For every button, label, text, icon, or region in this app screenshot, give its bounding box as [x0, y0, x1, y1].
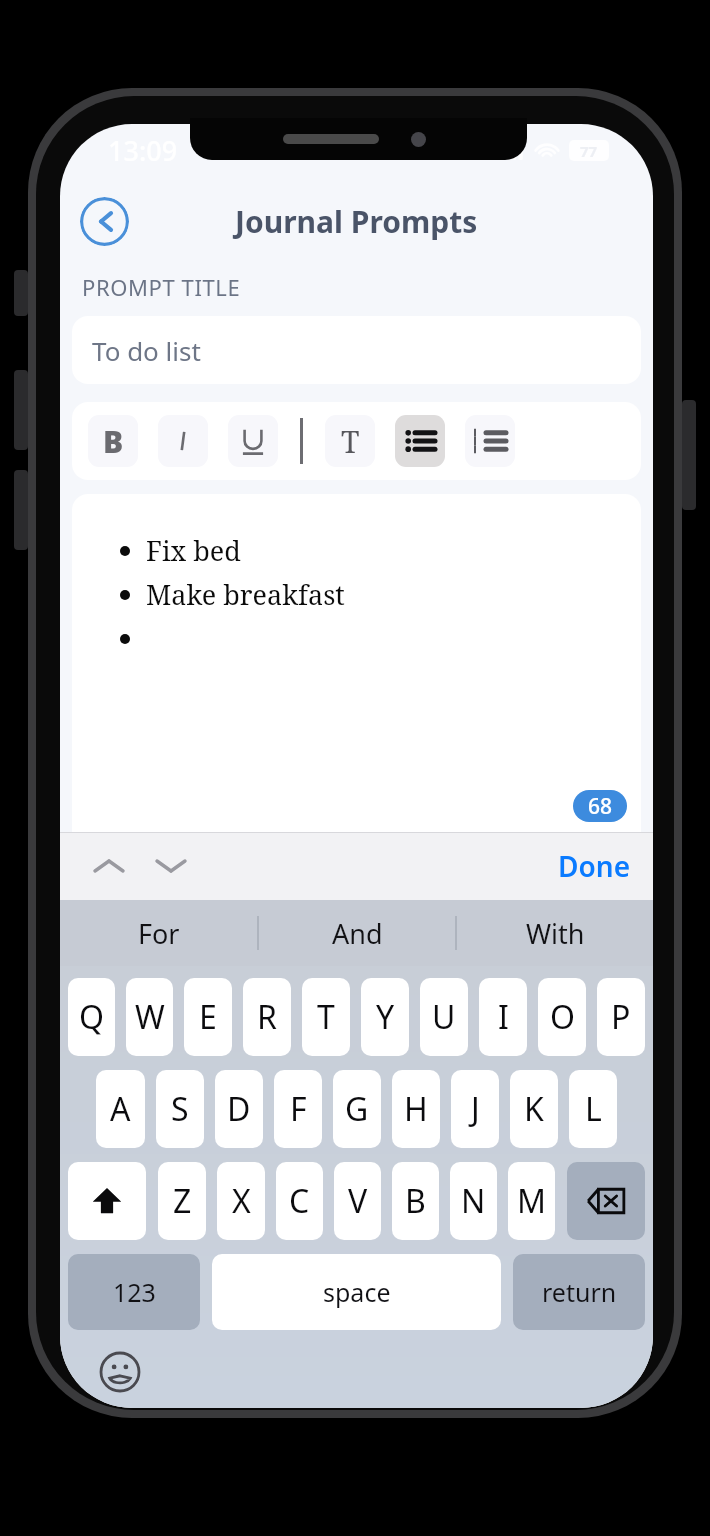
button[interactable]: P: [597, 978, 645, 1056]
staticText: I: [498, 995, 509, 1039]
button[interactable]: V: [334, 1162, 381, 1240]
button[interactable]: F: [274, 1070, 322, 1148]
button[interactable]: A: [96, 1070, 145, 1148]
button[interactable]: Z: [158, 1162, 206, 1240]
staticText: E: [199, 995, 217, 1039]
staticText: M: [517, 1179, 547, 1223]
button[interactable]: Back: [80, 197, 129, 246]
staticText: space: [323, 1275, 391, 1309]
button[interactable]: S: [156, 1070, 204, 1148]
staticText: Q: [79, 995, 104, 1039]
staticText: U: [432, 995, 456, 1039]
button[interactable]: And: [259, 900, 455, 966]
staticText: B: [405, 1179, 426, 1223]
button[interactable]: Underline: [228, 415, 278, 467]
button[interactable]: N: [450, 1162, 497, 1240]
staticText: C: [289, 1179, 310, 1223]
button[interactable]: J: [451, 1070, 499, 1148]
button[interactable]: E: [184, 978, 232, 1056]
button[interactable]: H: [392, 1070, 440, 1148]
button[interactable]: Previous field: [86, 843, 132, 889]
button[interactable]: Bullet list: [395, 415, 445, 467]
button[interactable]: C: [276, 1162, 323, 1240]
staticText: B: [103, 421, 124, 462]
button[interactable]: Next field: [148, 843, 194, 889]
button[interactable]: Q: [68, 978, 115, 1056]
staticText: Fix bed: [146, 532, 241, 569]
button[interactable]: T: [302, 978, 350, 1056]
staticText: S: [171, 1087, 189, 1131]
button[interactable]: For: [60, 900, 257, 966]
staticText: N: [461, 1179, 486, 1223]
staticText: PROMPT TITLE: [82, 272, 241, 302]
staticText: T: [317, 995, 335, 1039]
staticText: Y: [376, 995, 395, 1039]
staticText: D: [227, 1087, 251, 1131]
button[interactable]: G: [333, 1070, 381, 1148]
staticText: J: [471, 1087, 480, 1131]
button[interactable]: 123: [68, 1254, 200, 1330]
button[interactable]: Text style: [325, 415, 375, 467]
button[interactable]: W: [126, 978, 173, 1056]
button[interactable]: Done: [536, 837, 653, 895]
staticText: 77: [580, 141, 598, 161]
staticText: 13:09: [108, 132, 178, 169]
button[interactable]: L: [569, 1070, 617, 1148]
staticText: Journal Prompts: [235, 201, 478, 242]
staticText: Z: [173, 1179, 192, 1223]
button[interactable]: D: [215, 1070, 263, 1148]
button[interactable]: return: [513, 1254, 645, 1330]
button[interactable]: K: [510, 1070, 558, 1148]
button[interactable]: Fix bed: [72, 494, 641, 832]
staticText: Done: [558, 847, 631, 885]
button[interactable]: R: [243, 978, 291, 1056]
staticText: To do list: [92, 333, 201, 368]
button[interactable]: With: [457, 900, 653, 966]
button[interactable]: B: [88, 415, 138, 467]
staticText: P: [611, 995, 631, 1039]
button[interactable]: X: [217, 1162, 265, 1240]
staticText: Make breakfast: [146, 576, 345, 613]
staticText: return: [542, 1275, 617, 1309]
button[interactable]: O: [538, 978, 586, 1056]
button[interactable]: To do list: [72, 316, 641, 384]
button[interactable]: Backspace: [567, 1162, 645, 1240]
staticText: And: [332, 915, 383, 952]
button[interactable]: Numbered list: [465, 415, 515, 467]
staticText: For: [138, 915, 180, 952]
staticText: F: [290, 1087, 307, 1131]
staticText: T: [341, 421, 360, 462]
staticText: L: [585, 1087, 602, 1131]
staticText: G: [345, 1087, 369, 1131]
button[interactable]: space: [212, 1254, 501, 1330]
button[interactable]: M: [508, 1162, 555, 1240]
staticText: H: [404, 1087, 428, 1131]
staticText: A: [110, 1087, 131, 1131]
button[interactable]: I: [479, 978, 527, 1056]
button[interactable]: U: [420, 978, 468, 1056]
button[interactable]: Shift: [68, 1162, 146, 1240]
staticText: W: [135, 995, 165, 1039]
button[interactable]: Italic: [158, 415, 208, 467]
staticText: 123: [113, 1275, 156, 1309]
staticText: With: [526, 915, 585, 952]
staticText: X: [232, 1179, 251, 1223]
staticText: 68: [588, 792, 613, 821]
staticText: K: [524, 1087, 544, 1131]
button[interactable]: B: [392, 1162, 439, 1240]
button[interactable]: Y: [361, 978, 409, 1056]
staticText: V: [348, 1179, 368, 1223]
staticText: R: [257, 995, 277, 1039]
button[interactable]: Emoji: [94, 1346, 146, 1398]
staticText: O: [550, 995, 575, 1039]
